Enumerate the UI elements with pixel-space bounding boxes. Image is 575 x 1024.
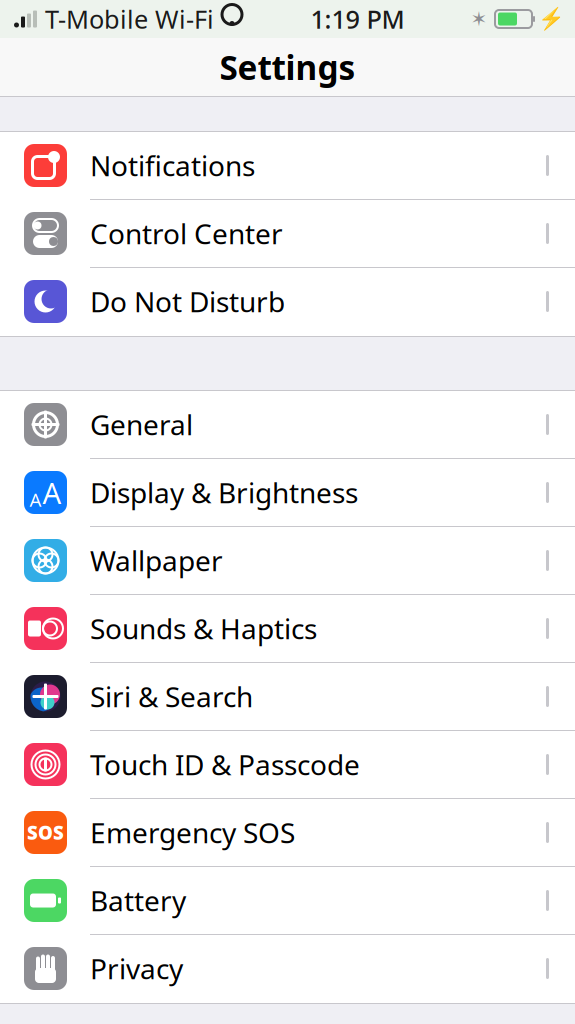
button[interactable]: Notifications	[0, 132, 575, 200]
staticText: Settings	[219, 45, 355, 89]
staticText: ⚡	[538, 7, 565, 31]
staticText: Siri & Search	[90, 678, 253, 715]
staticText: Sounds & Haptics	[90, 610, 317, 647]
button[interactable]: Do Not Disturb	[0, 268, 575, 336]
button[interactable]: Control Center	[0, 200, 575, 268]
staticText: A	[42, 473, 61, 512]
button[interactable]: Wallpaper	[0, 527, 575, 595]
staticText: T-Mobile Wi-Fi	[45, 2, 214, 36]
staticText: Wallpaper	[90, 542, 223, 579]
staticText: Control Center	[90, 215, 283, 252]
button[interactable]: General	[0, 391, 575, 459]
staticText: SOS	[27, 820, 64, 845]
staticText: 1:19 PM	[310, 2, 404, 36]
button[interactable]: Sounds & Haptics	[0, 595, 575, 663]
staticText: Notifications	[90, 147, 255, 184]
staticText: Privacy	[90, 950, 183, 987]
staticText: ✶	[470, 8, 487, 30]
staticText: Touch ID & Passcode	[90, 746, 360, 783]
staticText: Emergency SOS	[90, 814, 295, 851]
button[interactable]: Privacy	[0, 935, 575, 1003]
staticText: General	[90, 406, 193, 443]
button[interactable]: A	[0, 459, 575, 527]
button[interactable]: Battery	[0, 867, 575, 935]
staticText: Battery	[90, 882, 186, 919]
staticText: Display & Brightness	[90, 474, 358, 511]
button[interactable]: SOS	[0, 799, 575, 867]
staticText: A	[29, 487, 41, 512]
button[interactable]: Siri & Search	[0, 663, 575, 731]
staticText: Do Not Disturb	[90, 283, 285, 320]
button[interactable]: Touch ID & Passcode	[0, 731, 575, 799]
